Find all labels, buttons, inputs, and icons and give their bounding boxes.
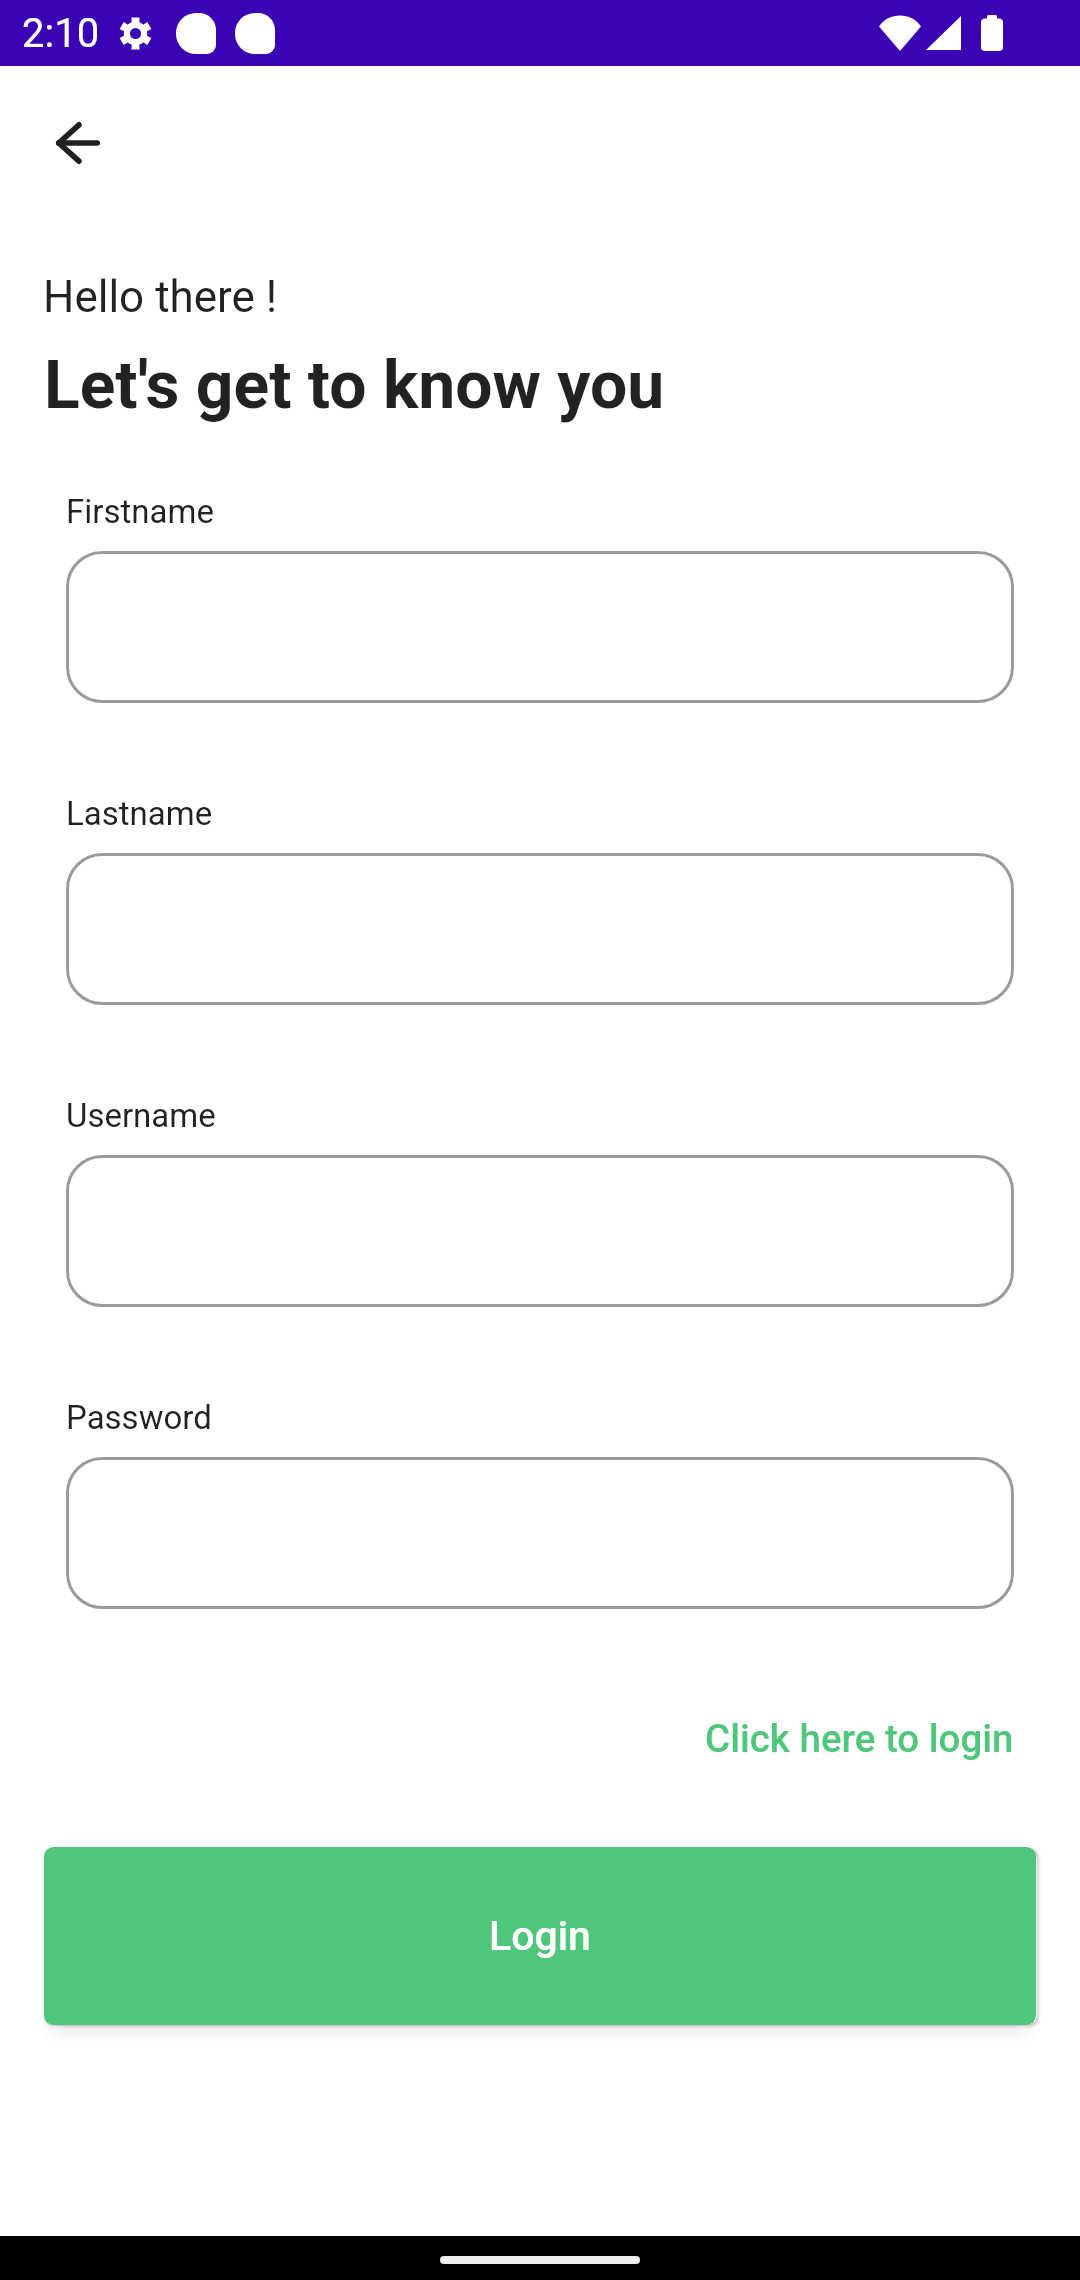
staticText: Password bbox=[66, 1398, 212, 1437]
button[interactable]: Login bbox=[44, 1847, 1036, 2025]
staticText: Firstname bbox=[66, 492, 214, 531]
staticText: Let's get to know you bbox=[44, 347, 665, 424]
button[interactable]: Click here to login bbox=[691, 1700, 1028, 1777]
staticText: Username bbox=[66, 1096, 216, 1135]
staticText: Login bbox=[489, 1912, 591, 1960]
staticText: 2:10 bbox=[22, 10, 100, 57]
button[interactable]: Back bbox=[30, 95, 126, 191]
button[interactable]: Firstname bbox=[66, 551, 1014, 703]
button[interactable]: Lastname bbox=[66, 853, 1014, 1005]
button[interactable]: Password bbox=[66, 1457, 1014, 1609]
button[interactable]: Username bbox=[66, 1155, 1014, 1307]
staticText: Lastname bbox=[66, 794, 213, 833]
staticText: Hello there ! bbox=[43, 271, 278, 323]
staticText: Click here to login bbox=[705, 1716, 1014, 1761]
